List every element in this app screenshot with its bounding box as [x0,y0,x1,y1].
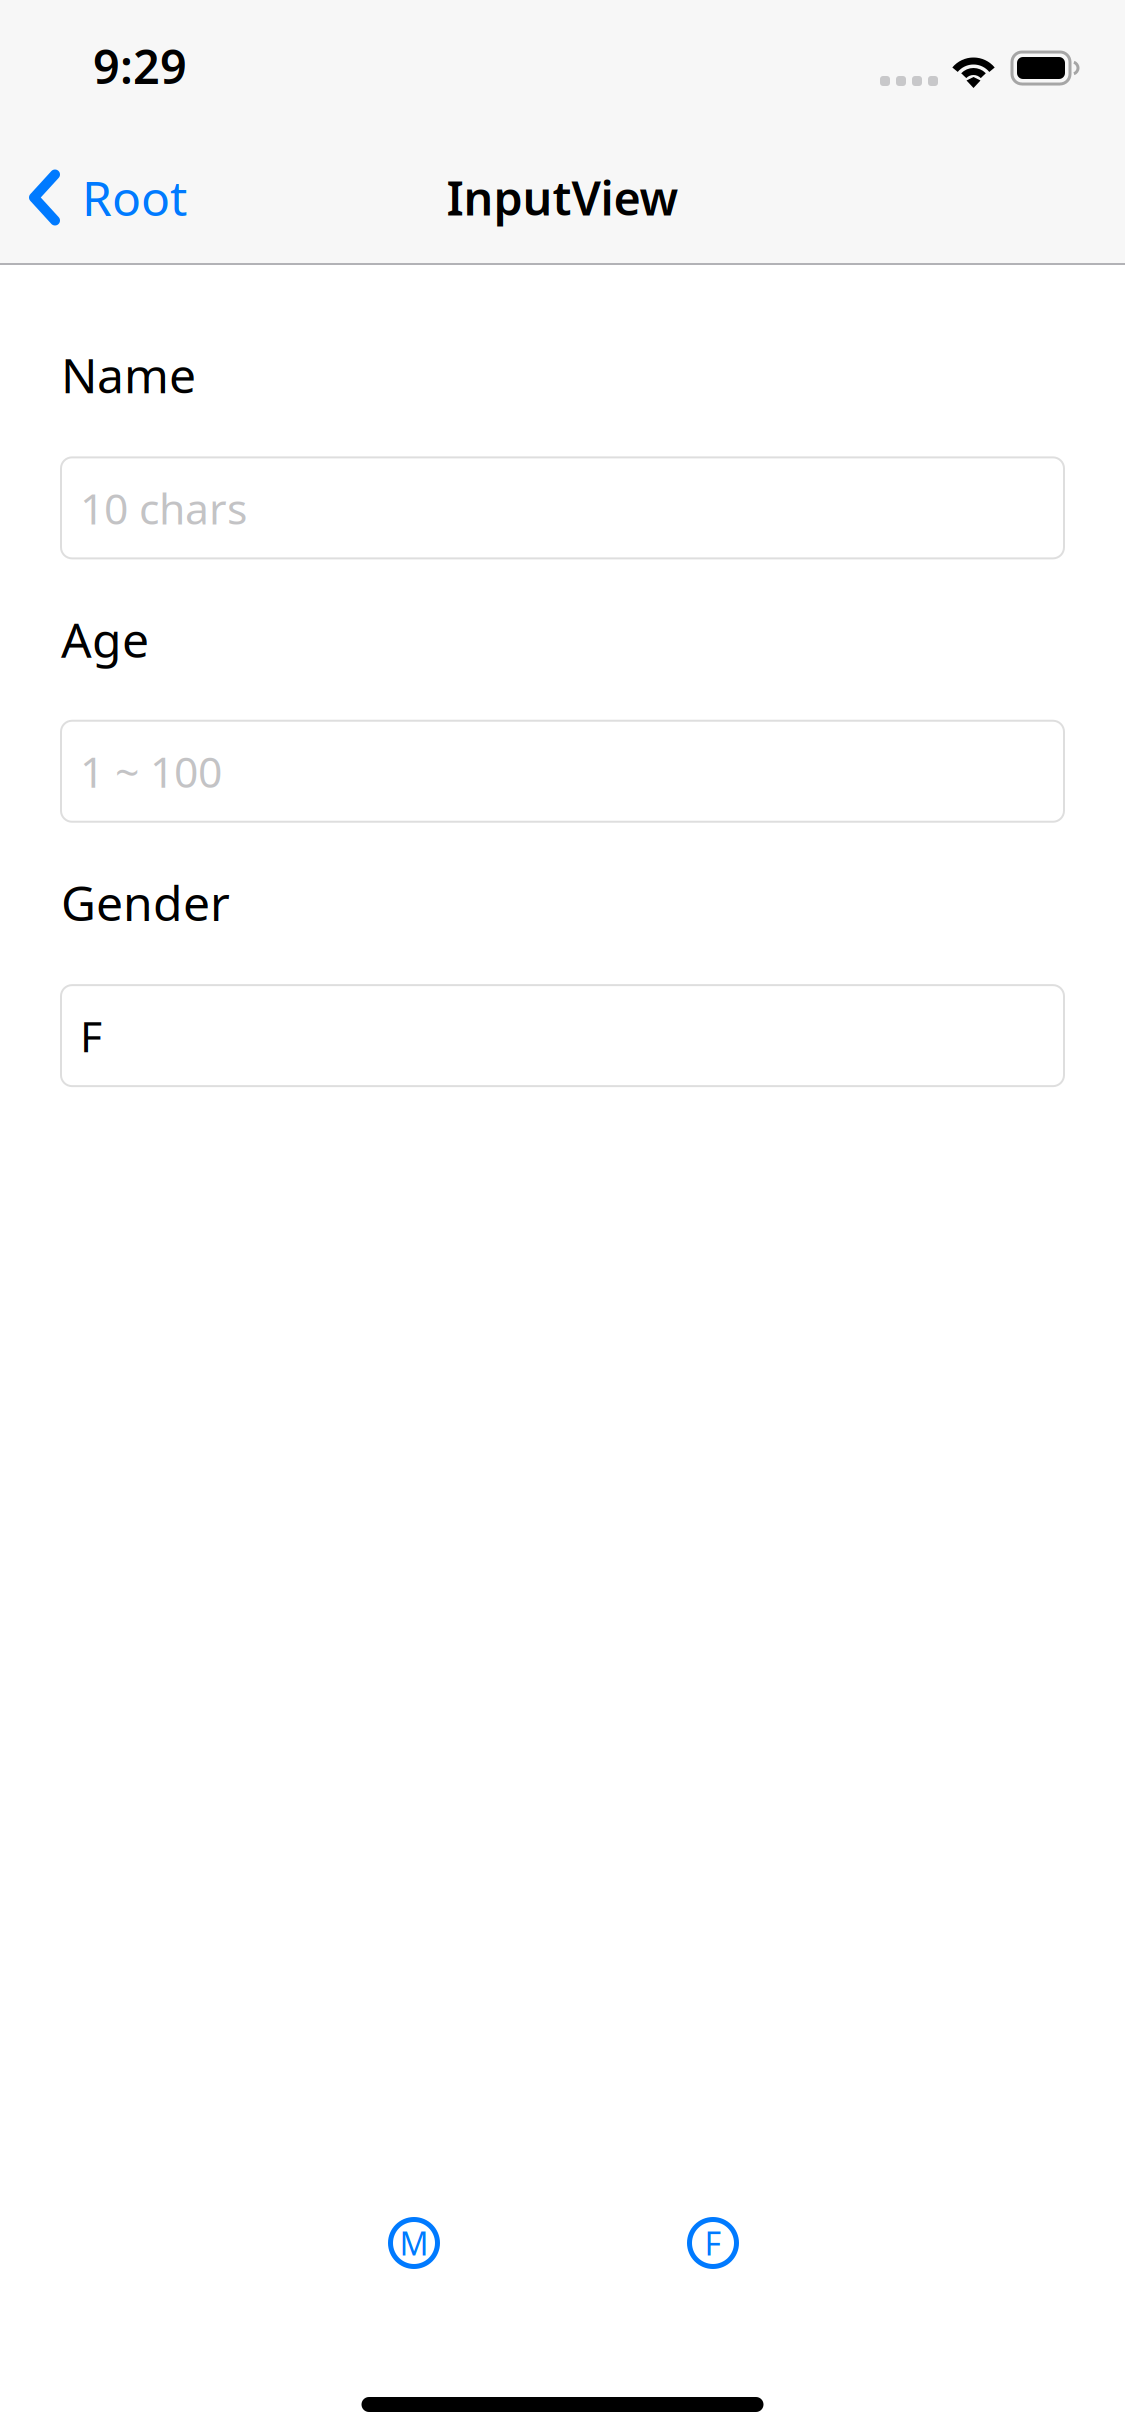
button[interactable]: Select male [388,2217,440,2269]
staticText: 9:29 [93,34,187,98]
staticText: Gender [61,870,230,935]
staticText: F [704,2221,721,2265]
staticText: M [399,2221,428,2265]
button[interactable]: F [61,985,1064,1086]
staticText: 1 ~ 100 [80,742,222,800]
button[interactable]: 10 chars [61,457,1064,558]
staticText: Age [61,606,149,672]
staticText: InputView [446,166,678,229]
staticText: Name [61,342,196,407]
staticText: Root [82,165,187,230]
button[interactable]: Root [0,132,215,263]
button[interactable]: 1 ~ 100 [61,721,1064,822]
staticText: F [80,1007,102,1065]
button[interactable]: Select female [687,2217,739,2269]
staticText: 10 chars [80,479,247,537]
